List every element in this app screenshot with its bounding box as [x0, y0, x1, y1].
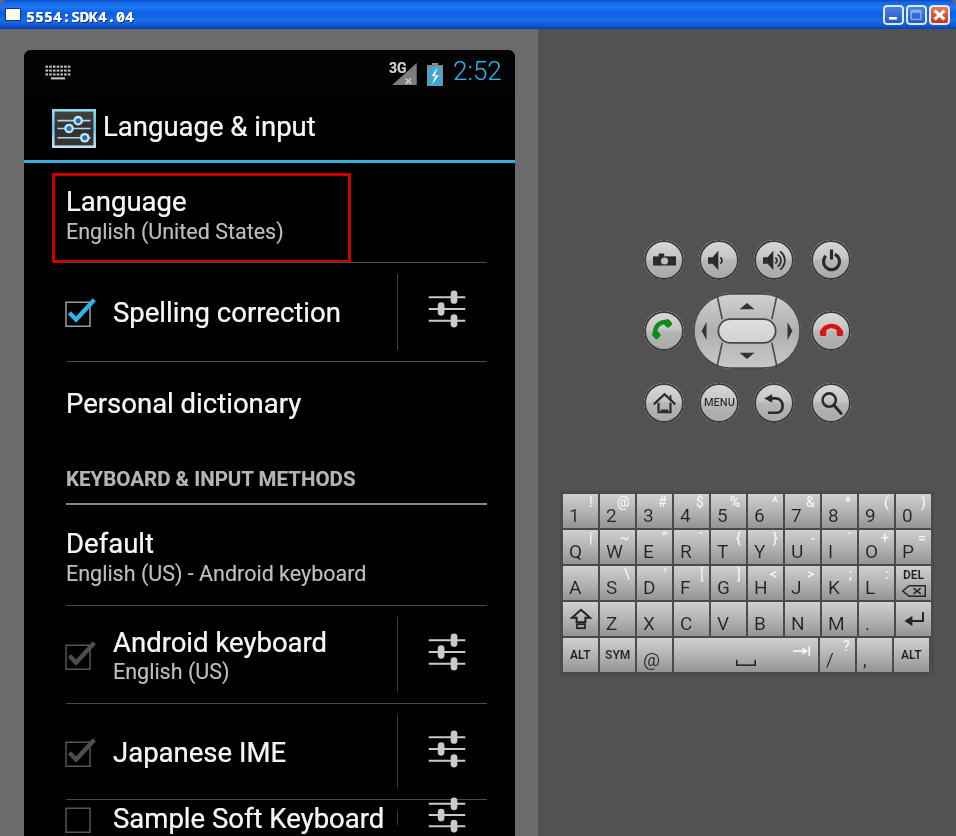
button[interactable]: Call: [644, 311, 684, 351]
button[interactable]: 1: [563, 494, 598, 528]
button[interactable]: End call: [811, 311, 851, 351]
staticText: .: [865, 612, 871, 634]
staticText: Sample Soft Keyboard: [113, 802, 385, 834]
staticText: Japanese IME: [113, 736, 287, 768]
staticText: Android keyboard: [113, 626, 328, 658]
button[interactable]: V: [711, 602, 746, 636]
staticText: 2:52: [453, 56, 502, 86]
staticText: +: [881, 530, 889, 546]
button[interactable]: Default: [24, 505, 515, 605]
button[interactable]: 7: [785, 494, 820, 528]
button[interactable]: Directional pad: [693, 293, 801, 369]
button[interactable]: [563, 602, 598, 636]
button[interactable]: @: [637, 638, 672, 672]
button[interactable]: Japanese IME: [24, 704, 397, 799]
button[interactable]: 9: [859, 494, 894, 528]
staticText: \: [624, 566, 630, 582]
staticText: |: [589, 530, 593, 546]
button[interactable]: Language: [24, 163, 515, 262]
button[interactable]: DEL: [896, 566, 931, 600]
staticText: Language: [66, 185, 187, 217]
button[interactable]: Settings for Sample Soft Keyboard: [398, 800, 515, 836]
button[interactable]: D: [637, 566, 672, 600]
button[interactable]: O: [859, 530, 894, 564]
staticText: /: [826, 648, 834, 670]
button[interactable]: 4: [674, 494, 709, 528]
button[interactable]: I: [822, 530, 857, 564]
staticText: @: [643, 648, 661, 670]
button[interactable]: K: [822, 566, 857, 600]
button[interactable]: S: [600, 566, 635, 600]
button[interactable]: SYM: [600, 638, 635, 672]
button[interactable]: E: [637, 530, 672, 564]
button[interactable]: .: [859, 602, 894, 636]
button[interactable]: Settings for Spelling correction: [398, 263, 515, 361]
staticText: 3: [643, 504, 654, 526]
button[interactable]: H: [748, 566, 783, 600]
button[interactable]: 8: [822, 494, 857, 528]
button[interactable]: /: [820, 638, 855, 672]
staticText: ´: [847, 530, 852, 546]
staticText: ALT: [570, 648, 591, 662]
button[interactable]: Back: [754, 383, 794, 423]
staticText: MENU: [704, 396, 735, 409]
button[interactable]: Sample Soft Keyboard: [24, 800, 397, 836]
staticText: K: [828, 576, 840, 598]
button[interactable]: N: [785, 602, 820, 636]
button[interactable]: [896, 602, 931, 636]
button[interactable]: Camera: [644, 240, 684, 280]
button[interactable]: ,: [857, 638, 892, 672]
button[interactable]: Z: [600, 602, 635, 636]
button[interactable]: Home: [644, 383, 684, 423]
staticText: `: [699, 530, 704, 546]
button[interactable]: 3: [637, 494, 672, 528]
staticText: English (United States): [66, 219, 284, 244]
button[interactable]: [674, 638, 818, 672]
button[interactable]: M: [822, 602, 857, 636]
button[interactable]: Y: [748, 530, 783, 564]
button[interactable]: Maximize: [906, 5, 927, 25]
button[interactable]: Search: [811, 383, 851, 423]
button[interactable]: Volume up: [754, 240, 794, 280]
staticText: 4: [680, 504, 691, 526]
button[interactable]: 5: [711, 494, 746, 528]
button[interactable]: 0: [896, 494, 931, 528]
button[interactable]: P: [896, 530, 931, 564]
staticText: 5554:SDK4.04: [27, 7, 136, 27]
button[interactable]: 6: [748, 494, 783, 528]
button[interactable]: J: [785, 566, 820, 600]
staticText: }: [773, 530, 778, 546]
button[interactable]: Android keyboard: [24, 606, 397, 703]
button[interactable]: B: [748, 602, 783, 636]
button[interactable]: ALT: [563, 638, 598, 672]
button[interactable]: Personal dictionary: [24, 362, 515, 444]
button[interactable]: G: [711, 566, 746, 600]
staticText: P: [902, 540, 914, 562]
button[interactable]: F: [674, 566, 709, 600]
button[interactable]: X: [637, 602, 672, 636]
button[interactable]: MENU: [699, 383, 739, 423]
button[interactable]: Q: [563, 530, 598, 564]
button[interactable]: 2: [600, 494, 635, 528]
staticText: &: [806, 494, 815, 510]
button[interactable]: C: [674, 602, 709, 636]
button[interactable]: Close: [929, 5, 950, 25]
button[interactable]: A: [563, 566, 598, 600]
button[interactable]: Volume down: [699, 240, 739, 280]
button[interactable]: Power: [811, 240, 851, 280]
button[interactable]: Settings for Android keyboard: [398, 606, 515, 703]
staticText: Default: [66, 527, 154, 559]
button[interactable]: ALT: [894, 638, 929, 672]
button[interactable]: Spelling correction: [24, 263, 397, 361]
button[interactable]: Minimize: [883, 5, 904, 25]
button[interactable]: U: [785, 530, 820, 564]
staticText: Language & input: [103, 110, 316, 142]
button[interactable]: L: [859, 566, 894, 600]
staticText: U: [791, 540, 804, 562]
button[interactable]: T: [711, 530, 746, 564]
staticText: ,: [863, 648, 867, 670]
button[interactable]: R: [674, 530, 709, 564]
button[interactable]: W: [600, 530, 635, 564]
button[interactable]: Settings for Japanese IME: [398, 704, 515, 799]
staticText: H: [754, 576, 768, 598]
